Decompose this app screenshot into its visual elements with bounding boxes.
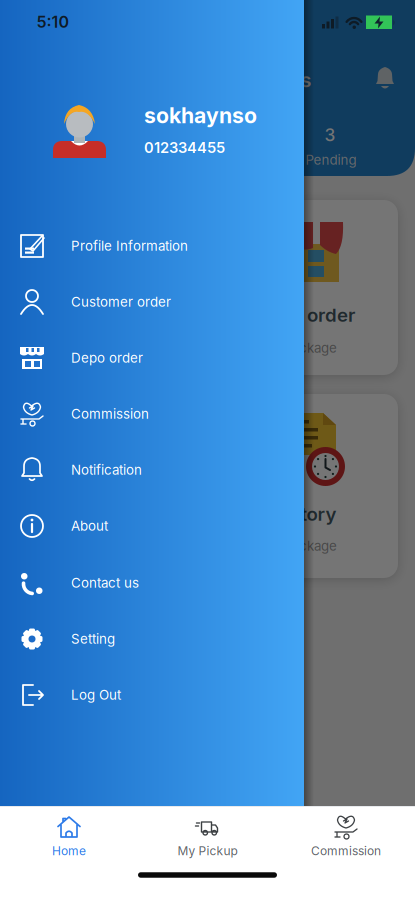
staticText: Commission	[311, 844, 381, 858]
button[interactable]: Setting	[3, 613, 293, 665]
staticText: Profile Information	[71, 238, 188, 254]
button[interactable]: Log Out	[3, 669, 293, 721]
button[interactable]: Depo order	[3, 332, 293, 384]
staticText: 012334455	[144, 139, 225, 156]
staticText: Home	[52, 844, 86, 858]
button[interactable]: About	[3, 500, 293, 552]
button[interactable]: Home	[9, 807, 129, 865]
button[interactable]: Depo order	[212, 200, 398, 375]
staticText: 5:10	[36, 13, 69, 31]
button[interactable]: Contact us	[3, 557, 293, 609]
button[interactable]: Customer order	[3, 276, 293, 328]
button[interactable]: My Pickup	[147, 807, 267, 865]
staticText: Depo order	[255, 304, 355, 326]
button[interactable]: Commission	[286, 807, 406, 865]
button[interactable]: Notification	[3, 444, 293, 496]
staticText: 1 package	[275, 538, 337, 554]
staticText: Log Out	[71, 687, 121, 703]
staticText: 1 package	[275, 340, 337, 356]
staticText: sokhaynso	[144, 103, 257, 128]
staticText: Customer order	[71, 294, 171, 310]
button[interactable]: History	[212, 394, 398, 578]
staticText: Setting	[71, 631, 115, 647]
staticText: 3	[324, 125, 335, 145]
staticText: About	[71, 518, 108, 534]
button[interactable]: Profile Information	[3, 220, 293, 272]
staticText: Commission	[71, 406, 149, 422]
staticText: Contact us	[71, 575, 139, 591]
staticText: Orders	[246, 68, 311, 92]
button[interactable]: Notifications	[373, 64, 397, 92]
staticText: Depo order	[71, 350, 143, 366]
staticText: History	[271, 503, 336, 525]
staticText: Pending	[305, 152, 356, 168]
button[interactable]: Commission	[3, 388, 293, 440]
staticText: Notification	[71, 462, 142, 478]
staticText: My Pickup	[177, 844, 237, 858]
